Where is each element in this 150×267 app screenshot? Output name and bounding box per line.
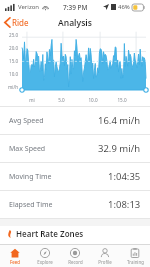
button[interactable]: Elapsed Time: [0, 191, 150, 218]
staticText: 10.0: [9, 71, 19, 77]
button[interactable]: Feed: [0, 245, 30, 267]
staticText: 15.0: [117, 97, 127, 103]
staticText: 15.0: [9, 58, 19, 64]
staticText: Moving Time: [9, 172, 52, 182]
staticText: 1:04:35: [108, 170, 141, 183]
button[interactable]: Moving Time: [0, 163, 150, 190]
staticText: 5.0: [58, 97, 65, 103]
staticText: 32.9 mi/h: [98, 142, 141, 155]
button[interactable]: Avg Speed: [0, 107, 150, 134]
button[interactable]: Max Speed: [0, 135, 150, 162]
staticText: mi/h: [8, 84, 19, 90]
staticText: mi: [29, 97, 35, 103]
button[interactable]: Explore: [30, 245, 60, 267]
staticText: 1:08:13: [108, 198, 141, 211]
button[interactable]: Training: [120, 245, 150, 267]
staticText: Heart Rate Zones: [16, 228, 84, 239]
button[interactable]: Record: [60, 245, 90, 267]
staticText: Feed: [10, 259, 20, 265]
staticText: 20.0: [9, 45, 19, 51]
staticText: Elapsed Time: [9, 200, 53, 210]
staticText: 25.0: [9, 32, 19, 38]
staticText: Record: [68, 259, 83, 265]
staticText: Profile: [98, 259, 112, 265]
staticText: Avg Speed: [9, 116, 44, 126]
staticText: 7:39 PM: [63, 3, 88, 12]
staticText: 10.0: [88, 97, 98, 103]
staticText: Training: [127, 259, 144, 265]
staticText: Verizon: [18, 3, 40, 11]
button[interactable]: Heart Rate Zones: [0, 226, 150, 241]
button[interactable]: Profile: [90, 245, 120, 267]
staticText: Explore: [37, 259, 53, 265]
staticText: Ride: [12, 17, 29, 28]
staticText: Max Speed: [9, 144, 46, 154]
button[interactable]: Ride: [0, 15, 35, 30]
staticText: Analysis: [58, 17, 92, 29]
staticText: 46%: [118, 3, 130, 11]
staticText: 16.4 mi/h: [98, 114, 141, 127]
